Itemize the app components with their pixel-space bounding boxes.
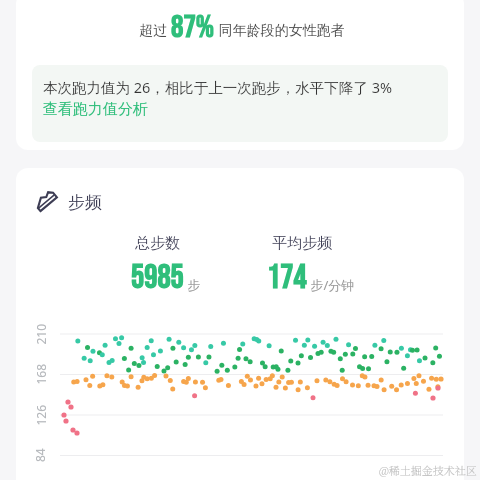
staticText: @稀土掘金技术社区 xyxy=(379,462,477,478)
staticText: 超过 xyxy=(139,20,171,39)
staticText: 126 xyxy=(32,404,48,425)
staticText: 87% xyxy=(171,9,215,46)
staticText: 168 xyxy=(32,363,48,384)
button[interactable]: 步频 xyxy=(0,0,34,21)
staticText: 本次跑力值为 26，相比于上一次跑步，水平下降了 3% xyxy=(43,77,392,97)
staticText: 84 xyxy=(32,448,48,462)
staticText: 步 xyxy=(184,276,201,294)
staticText: 平均步频 xyxy=(272,234,332,253)
staticText: 步/分钟 xyxy=(307,276,355,294)
staticText: 5985 xyxy=(131,258,184,298)
staticText: 总步数 xyxy=(135,234,180,253)
staticText: 同年龄段的女性跑者 xyxy=(215,20,345,39)
staticText: 210 xyxy=(32,323,48,344)
button[interactable]: 查看跑力值分析 xyxy=(0,0,105,19)
staticText: 174 xyxy=(267,258,307,298)
